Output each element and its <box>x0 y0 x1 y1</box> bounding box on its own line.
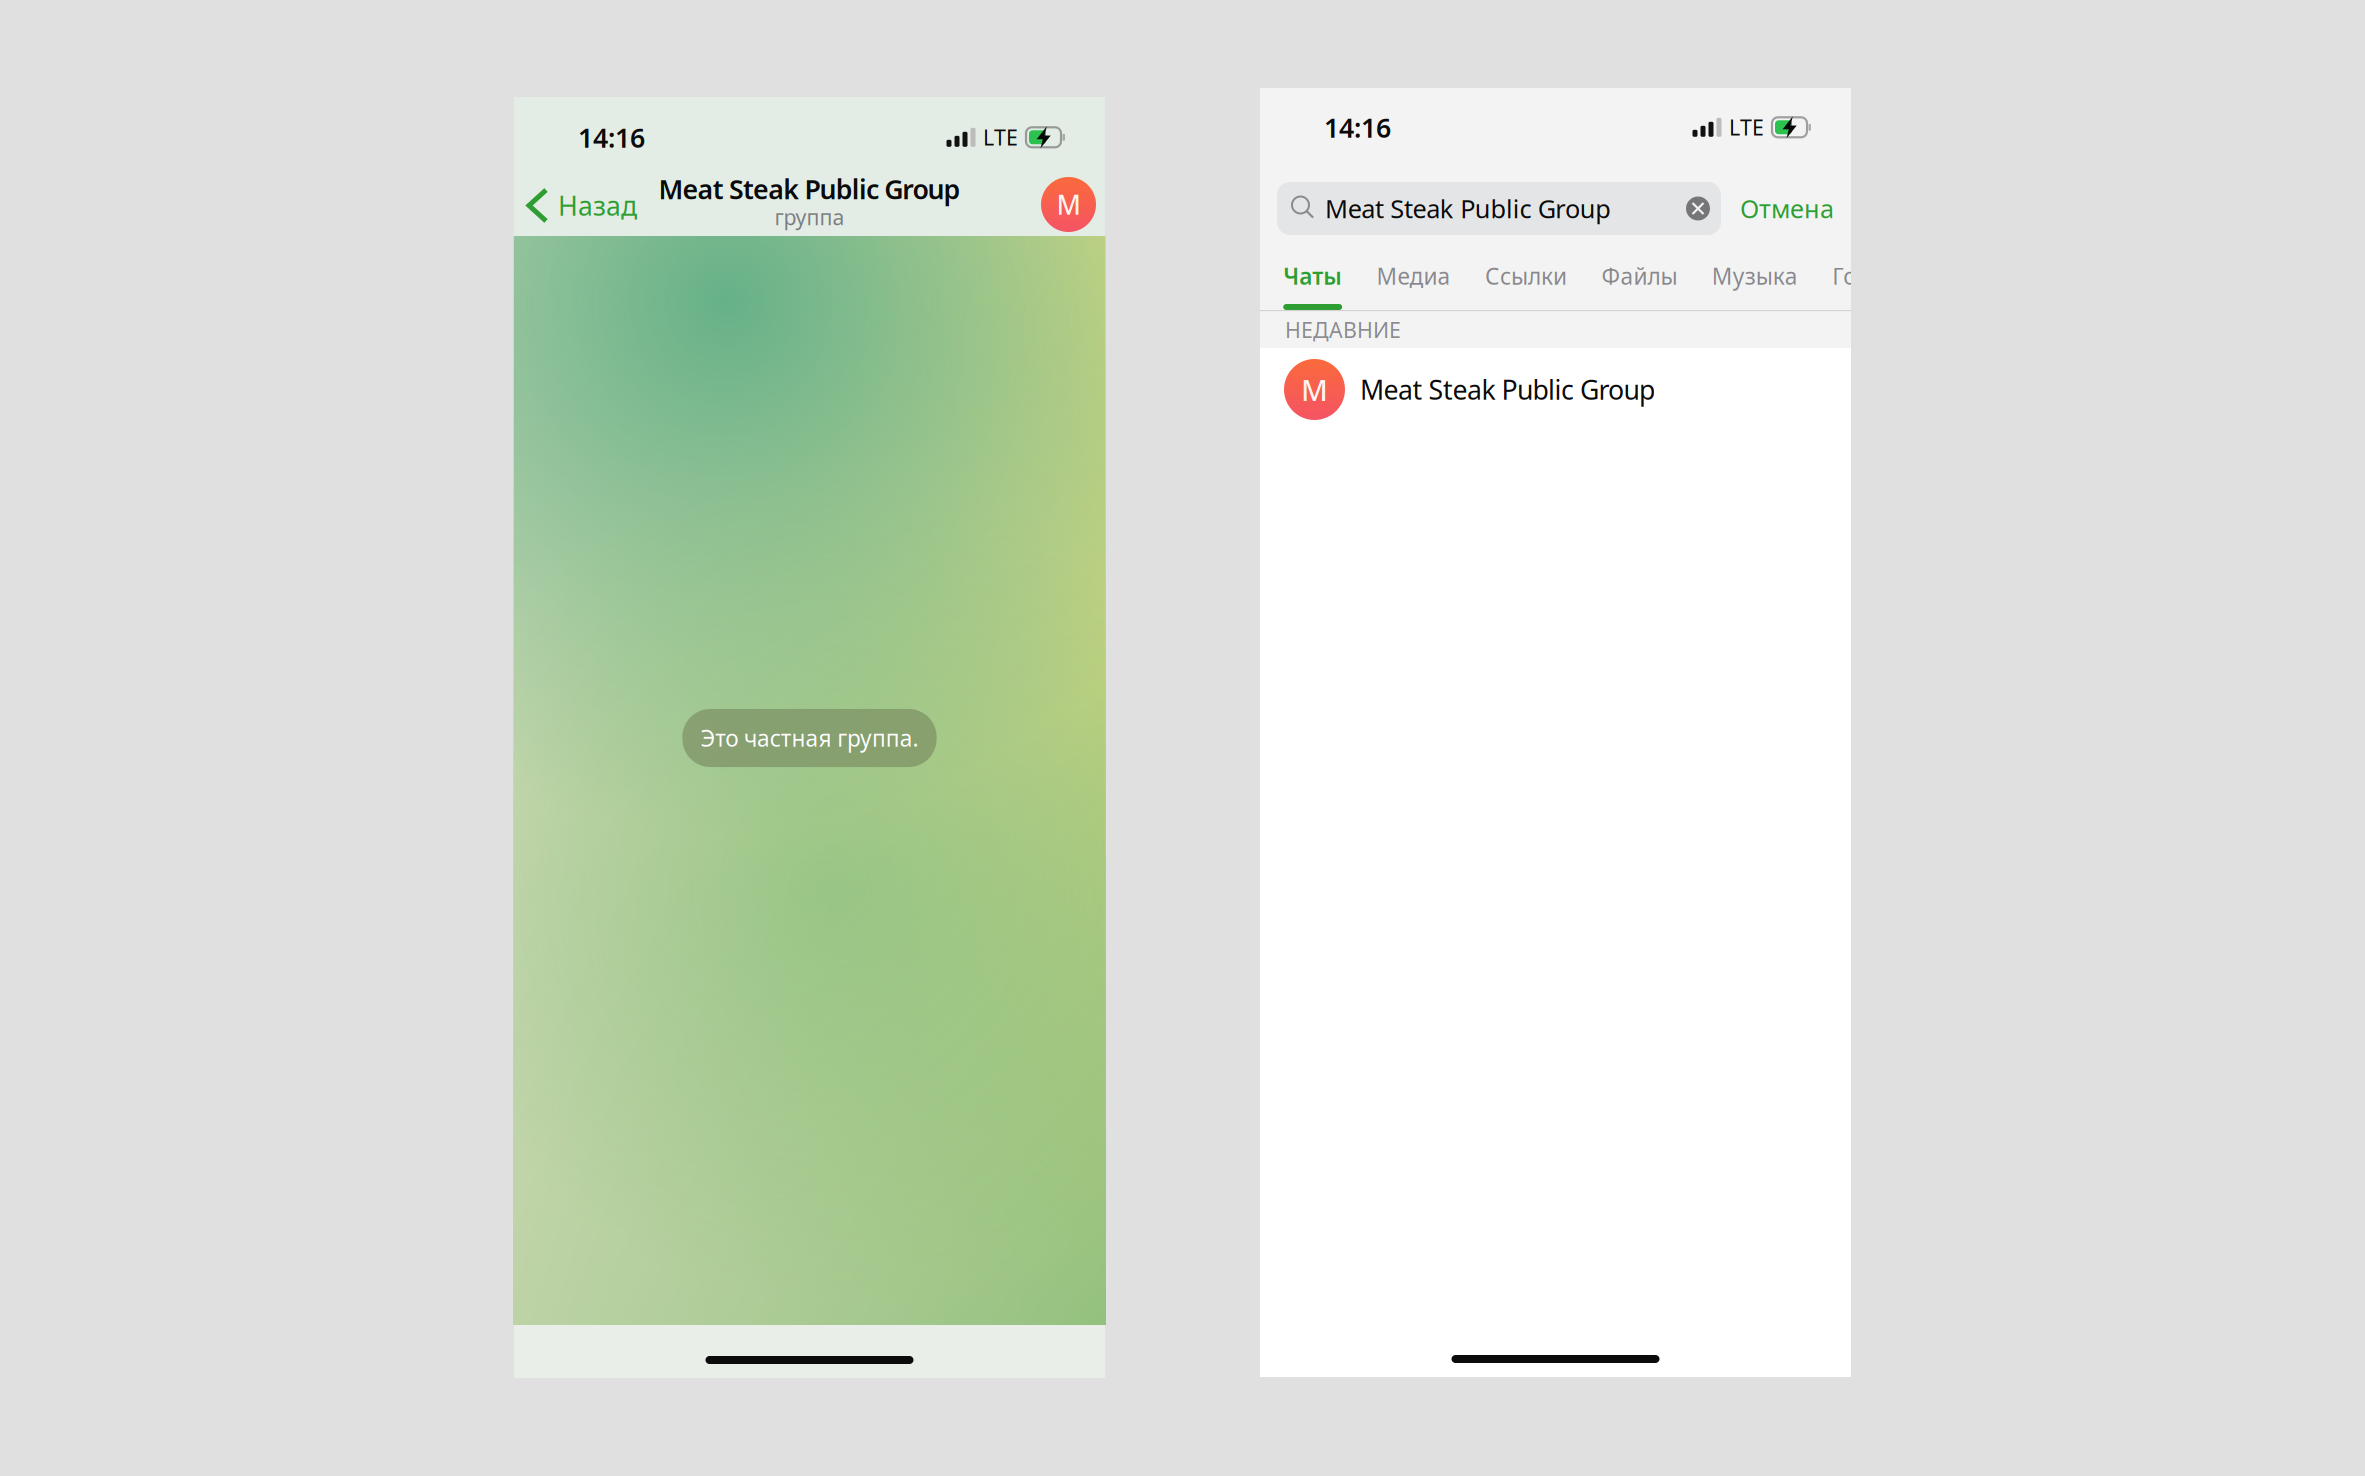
staticText: Чаты <box>1283 261 1342 291</box>
staticText: 14:16 <box>578 120 645 155</box>
button[interactable]: Чаты <box>1266 243 1359 310</box>
button[interactable]: Назад <box>514 165 637 236</box>
staticText: M <box>1301 370 1328 409</box>
staticText: Музыка <box>1712 261 1798 291</box>
staticText: Файлы <box>1601 261 1677 291</box>
button[interactable]: Clear search text <box>1686 182 1721 235</box>
staticText: LTE <box>1729 113 1764 141</box>
staticText: Голосовые <box>1832 261 1948 291</box>
staticText: группа <box>774 203 844 231</box>
staticText: НЕДАВНИЕ <box>1285 316 1401 344</box>
staticText: Медиа <box>1377 261 1451 291</box>
staticText: M <box>1056 187 1080 222</box>
staticText: Назад <box>558 188 637 223</box>
staticText: Отмена <box>1740 192 1834 225</box>
staticText: Это частная группа. <box>700 723 919 753</box>
staticText: Ссылки <box>1485 261 1567 291</box>
button[interactable]: Group avatar <box>1041 165 1105 236</box>
button[interactable]: M <box>1260 348 1851 431</box>
staticText: LTE <box>983 123 1018 151</box>
button[interactable]: Музыка <box>1695 243 1815 310</box>
staticText: Meat Steak Public Group <box>658 171 961 207</box>
button[interactable]: Отмена <box>1740 182 1834 235</box>
staticText: 14:16 <box>1324 110 1391 145</box>
button[interactable]: Ссылки <box>1468 243 1584 310</box>
staticText: Meat Steak Public Group <box>1325 192 1611 225</box>
button[interactable]: Медиа <box>1359 243 1468 310</box>
button[interactable]: Файлы <box>1584 243 1695 310</box>
button[interactable]: Голосовые <box>1815 243 1965 310</box>
staticText: Meat Steak Public Group <box>1360 372 1655 407</box>
